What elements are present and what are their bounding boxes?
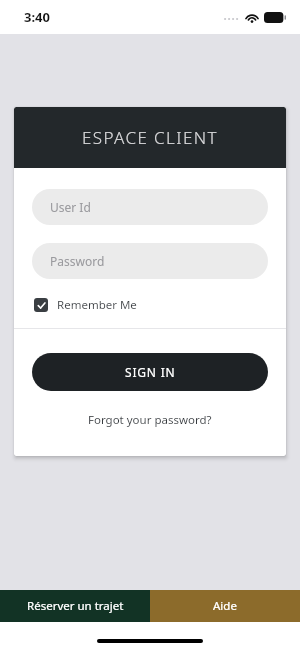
staticText: Forgot your password? [88,412,212,428]
staticText: ESPACE CLIENT [82,126,218,149]
other: Home indicator [97,639,203,643]
button[interactable]: Remember Me [32,294,139,316]
button[interactable]: Forgot your password? [82,409,218,431]
staticText: User Id [50,199,91,215]
staticText: Password [50,253,105,269]
button[interactable]: User Id [32,189,268,225]
staticText: SIGN IN [125,364,176,380]
staticText: Aide [213,598,237,614]
staticText: 3:40 [24,8,50,26]
staticText: Remember Me [57,297,137,313]
button[interactable]: SIGN IN [32,353,268,391]
button[interactable]: Réserver un trajet [0,590,150,622]
button[interactable]: Aide [150,590,300,622]
staticText: Réserver un trajet [27,598,124,614]
button[interactable]: Password [32,243,268,279]
